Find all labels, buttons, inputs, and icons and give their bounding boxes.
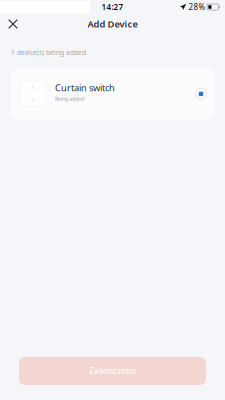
staticText: 14:27	[101, 2, 123, 12]
button[interactable]: Curtain switch	[11, 68, 214, 120]
staticText: Curtain switch	[55, 81, 115, 94]
staticText: Add Device	[87, 18, 137, 30]
staticText: 1 device(s) being added	[11, 48, 86, 57]
button[interactable]: Zakończono	[19, 357, 206, 385]
staticText: 28%	[189, 2, 206, 12]
button[interactable]: Close	[2, 14, 24, 34]
staticText: Zakończono	[89, 366, 136, 376]
staticText: Being added	[55, 95, 84, 102]
